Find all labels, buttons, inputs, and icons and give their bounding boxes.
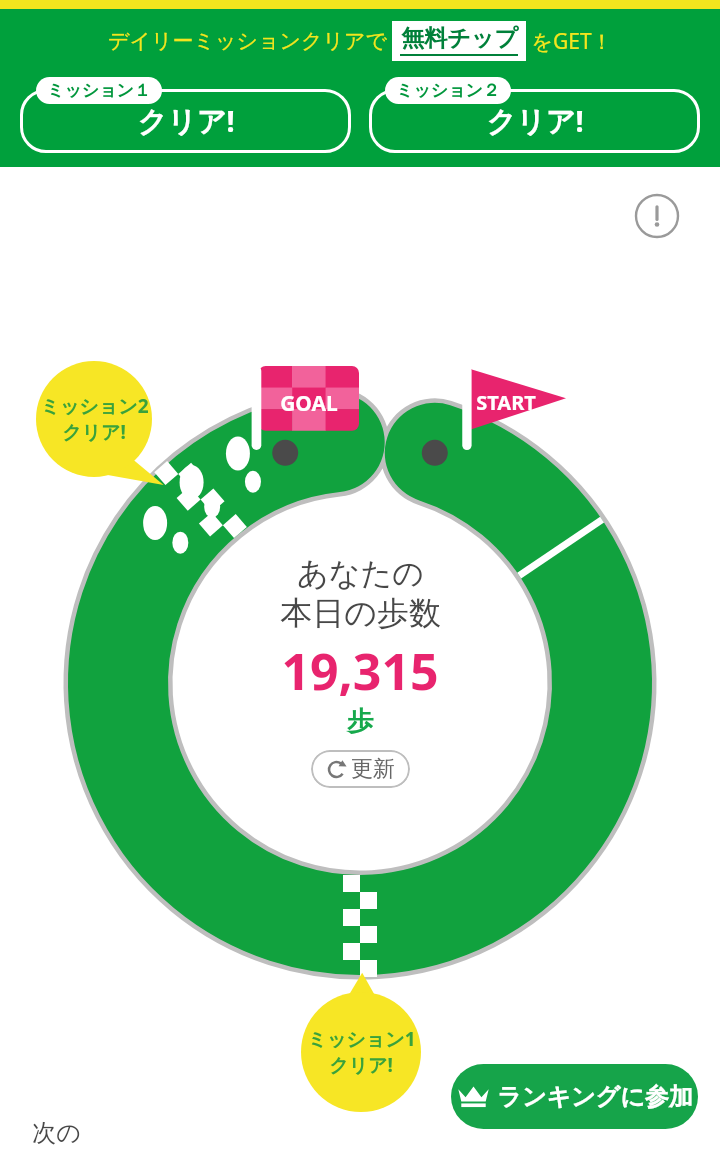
staticText: ミッション1	[307, 1026, 416, 1052]
staticText: あなたの	[297, 554, 424, 593]
staticText: 本日の歩数	[280, 593, 441, 633]
staticText: 更新	[351, 755, 395, 783]
staticText: クリア!	[329, 1052, 393, 1078]
button[interactable]: ランキングに参加	[451, 1064, 698, 1129]
staticText: をGET！	[531, 27, 613, 56]
staticText: デイリーミッションクリアで	[108, 28, 387, 54]
staticText: ミッション2	[40, 393, 149, 419]
staticText: クリア!	[62, 419, 126, 445]
staticText: ミッション１	[47, 80, 151, 101]
staticText: 19,315	[281, 637, 439, 705]
button[interactable]: クリア!	[369, 89, 700, 153]
staticText: クリア!	[137, 101, 235, 141]
staticText: ミッション２	[396, 80, 500, 101]
button[interactable]: Information	[634, 193, 680, 239]
staticText: GOAL	[280, 389, 338, 418]
staticText: 無料チップ	[401, 24, 518, 53]
staticText: ランキングに参加	[497, 1082, 693, 1112]
button[interactable]: 更新	[311, 750, 410, 788]
staticText: 歩	[347, 705, 373, 738]
staticText: START	[476, 389, 536, 416]
staticText: 次の	[32, 1118, 81, 1148]
button[interactable]: クリア!	[20, 89, 351, 153]
staticText: クリア!	[486, 101, 584, 141]
